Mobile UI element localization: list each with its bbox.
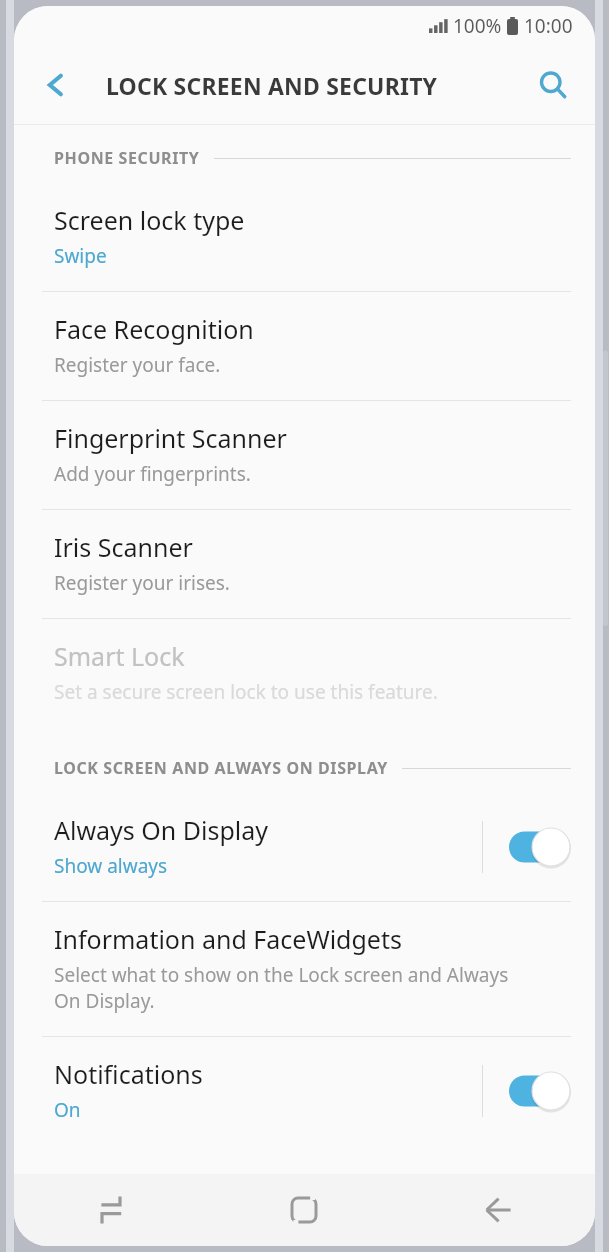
staticText: Fingerprint Scanner <box>54 421 287 455</box>
button[interactable]: Always On Display <box>14 793 595 901</box>
staticText: Notifications <box>54 1057 203 1091</box>
button[interactable]: Back <box>28 57 84 113</box>
button[interactable]: Information and FaceWidgets <box>14 902 595 1036</box>
button[interactable]: Notifications <box>14 1037 595 1145</box>
button[interactable]: Iris Scanner <box>14 510 595 618</box>
staticText: Select what to show on the Lock screen a… <box>54 962 509 1014</box>
staticText: LOCK SCREEN AND SECURITY <box>106 70 438 101</box>
staticText: PHONE SECURITY <box>54 147 200 169</box>
staticText: Set a secure screen lock to use this fea… <box>54 679 438 705</box>
button[interactable]: Notifications toggle <box>509 1071 571 1111</box>
button[interactable]: Smart Lock <box>14 619 595 727</box>
button[interactable]: Back <box>401 1174 595 1246</box>
staticText: 10:00 <box>524 13 573 39</box>
staticText: Show always <box>54 853 168 879</box>
staticText: 100% <box>453 13 502 39</box>
staticText: Information and FaceWidgets <box>54 922 402 956</box>
staticText: Swipe <box>54 243 107 269</box>
staticText: Smart Lock <box>54 639 185 673</box>
button[interactable]: Always On Display toggle <box>509 827 571 867</box>
staticText: Iris Scanner <box>54 530 193 564</box>
staticText: Add your fingerprints. <box>54 461 251 487</box>
staticText: Register your irises. <box>54 570 230 596</box>
button[interactable]: Search <box>525 57 581 113</box>
staticText: LOCK SCREEN AND ALWAYS ON DISPLAY <box>54 757 388 779</box>
staticText: Screen lock type <box>54 203 245 237</box>
button[interactable]: Screen lock type <box>14 183 595 291</box>
staticText: Always On Display <box>54 813 269 847</box>
button[interactable]: Recents <box>14 1174 207 1246</box>
button[interactable]: Home <box>207 1174 401 1246</box>
staticText: Face Recognition <box>54 312 254 346</box>
button[interactable]: Face Recognition <box>14 292 595 400</box>
button[interactable]: Fingerprint Scanner <box>14 401 595 509</box>
staticText: On <box>54 1097 81 1123</box>
staticText: Register your face. <box>54 352 221 378</box>
